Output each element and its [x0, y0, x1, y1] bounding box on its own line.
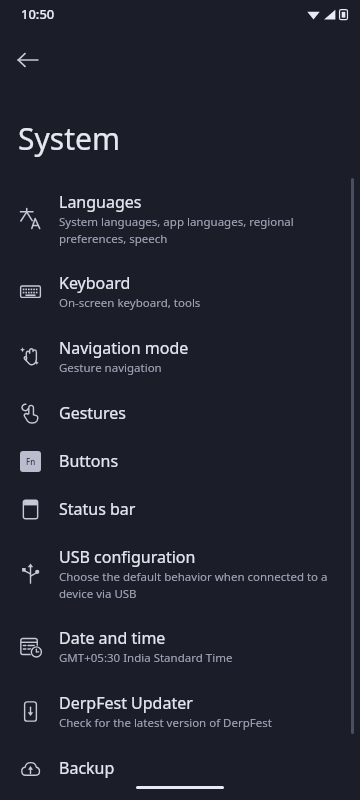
- staticText: Check for the latest version of DerpFest: [59, 715, 272, 731]
- staticText: Keyboard: [59, 272, 131, 294]
- button[interactable]: Date and time: [0, 614, 360, 679]
- staticText: Date and time: [59, 627, 166, 649]
- staticText: Languages: [59, 191, 142, 213]
- staticText: Backup: [59, 757, 115, 779]
- button[interactable]: Backup: [0, 744, 360, 792]
- staticText: Buttons: [59, 450, 119, 472]
- button[interactable]: USB configuration: [0, 533, 360, 614]
- button[interactable]: Fn: [0, 437, 360, 485]
- button[interactable]: Keyboard: [0, 259, 360, 324]
- staticText: On-screen keyboard, tools: [59, 295, 201, 311]
- button[interactable]: Navigation mode: [0, 324, 360, 389]
- staticText: System: [18, 118, 120, 159]
- staticText: Gesture navigation: [59, 360, 162, 376]
- staticText: Fn: [26, 456, 36, 467]
- button[interactable]: DerpFest Updater: [0, 679, 360, 744]
- staticText: Gestures: [59, 402, 126, 424]
- staticText: 10:50: [21, 5, 55, 23]
- staticText: Choose the default behavior when connect…: [59, 569, 328, 601]
- button[interactable]: Gestures: [0, 389, 360, 437]
- staticText: GMT+05:30 India Standard Time: [59, 650, 233, 666]
- staticText: System languages, app languages, regiona…: [59, 214, 294, 246]
- button[interactable]: Back: [6, 38, 50, 82]
- staticText: DerpFest Updater: [59, 692, 193, 714]
- button[interactable]: Languages: [0, 178, 360, 259]
- staticText: Navigation mode: [59, 337, 189, 359]
- staticText: Status bar: [59, 498, 136, 520]
- button[interactable]: Status bar: [0, 485, 360, 533]
- staticText: USB configuration: [59, 546, 196, 568]
